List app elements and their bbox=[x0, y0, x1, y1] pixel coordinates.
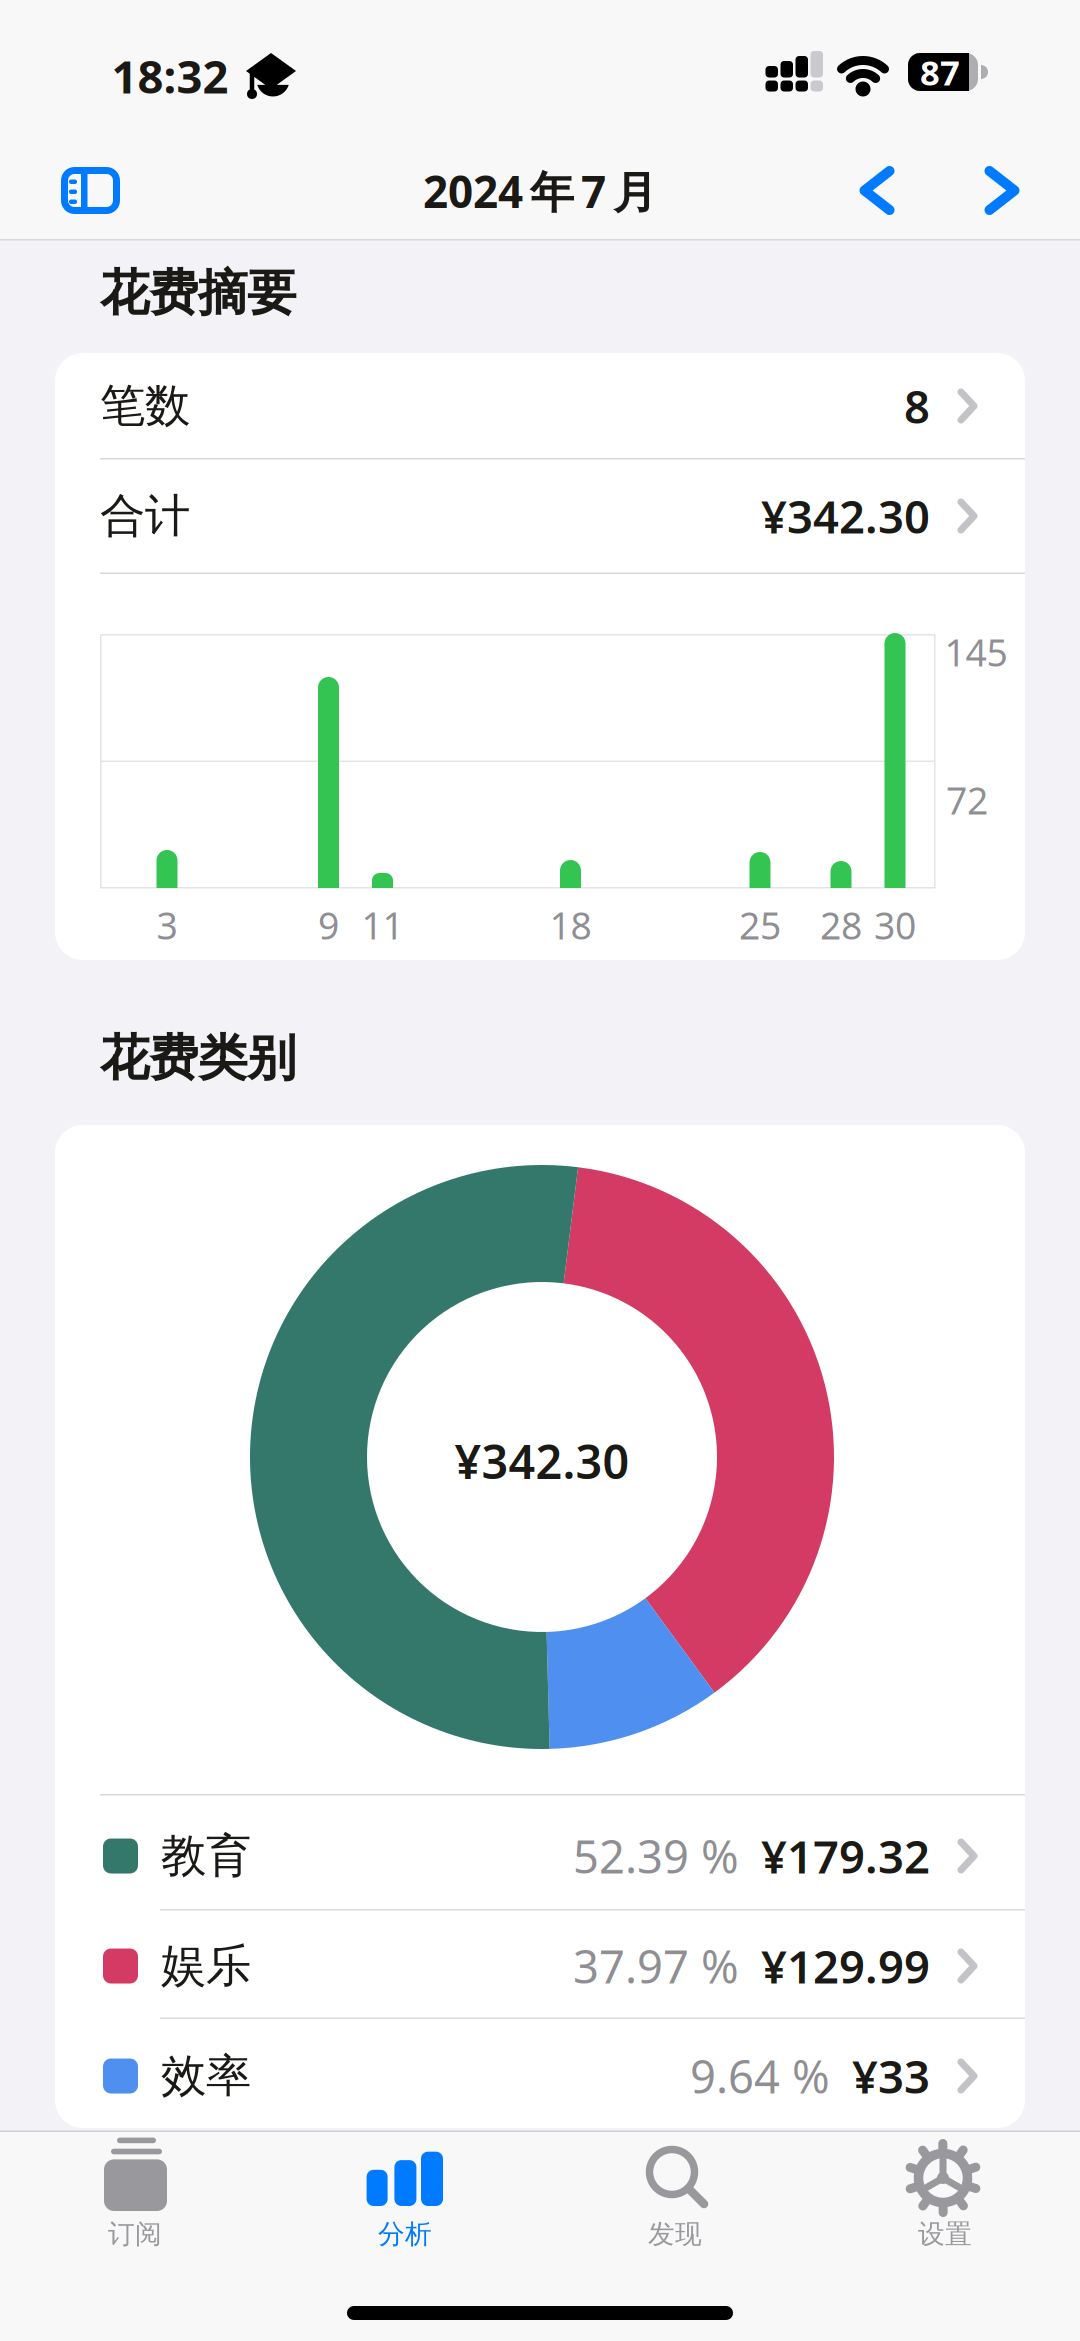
staticText: 订阅 bbox=[108, 2218, 162, 2250]
staticText: 30 bbox=[874, 900, 916, 950]
button[interactable]: Previous month bbox=[845, 159, 908, 222]
staticText: ¥342.30 bbox=[454, 1430, 629, 1492]
staticText: 2024 年 7 月 bbox=[423, 162, 657, 220]
button[interactable]: 合计 bbox=[100, 459, 1025, 573]
staticText: 设置 bbox=[918, 2218, 972, 2250]
staticText: 18 bbox=[549, 900, 591, 950]
staticText: 28 bbox=[820, 900, 862, 950]
button[interactable]: 娱乐 bbox=[100, 1912, 1025, 2020]
staticText: ¥342.30 bbox=[761, 486, 930, 546]
button[interactable]: 分析 bbox=[270, 2132, 540, 2262]
staticText: 72 bbox=[946, 775, 988, 825]
staticText: 9 bbox=[318, 900, 339, 950]
staticText: 8 bbox=[904, 376, 930, 436]
staticText: 发现 bbox=[648, 2218, 702, 2250]
button[interactable]: 笔数 bbox=[100, 353, 1025, 459]
button[interactable]: 订阅 bbox=[0, 2132, 270, 2262]
staticText: 笔数 bbox=[100, 378, 190, 434]
button[interactable]: 教育 bbox=[100, 1802, 1025, 1910]
staticText: 145 bbox=[944, 627, 1007, 677]
staticText: 效率 bbox=[161, 2048, 251, 2104]
staticText: 87 bbox=[920, 49, 960, 95]
staticText: 3 bbox=[156, 900, 177, 950]
staticText: 花费类别 bbox=[100, 1028, 296, 1088]
staticText: 教育 bbox=[161, 1828, 251, 1884]
staticText: 9.64 % bbox=[690, 2046, 830, 2106]
staticText: 52.39 % bbox=[573, 1826, 739, 1886]
staticText: 25 bbox=[739, 900, 781, 950]
staticText: ¥33 bbox=[852, 2046, 930, 2106]
staticText: 分析 bbox=[378, 2218, 432, 2250]
staticText: 娱乐 bbox=[161, 1938, 251, 1994]
button[interactable]: Sidebar bbox=[35, 135, 145, 245]
button[interactable]: 设置 bbox=[810, 2132, 1080, 2262]
staticText: ¥179.32 bbox=[761, 1826, 930, 1886]
staticText: 18:32 bbox=[111, 46, 228, 106]
button[interactable]: 发现 bbox=[540, 2132, 810, 2262]
staticText: ¥129.99 bbox=[761, 1936, 930, 1996]
staticText: 花费摘要 bbox=[100, 263, 296, 323]
staticText: 37.97 % bbox=[573, 1936, 739, 1996]
staticText: 11 bbox=[361, 900, 403, 950]
button[interactable]: 效率 bbox=[100, 2022, 1025, 2130]
staticText: 合计 bbox=[100, 488, 190, 544]
button[interactable]: Next month bbox=[970, 159, 1033, 222]
